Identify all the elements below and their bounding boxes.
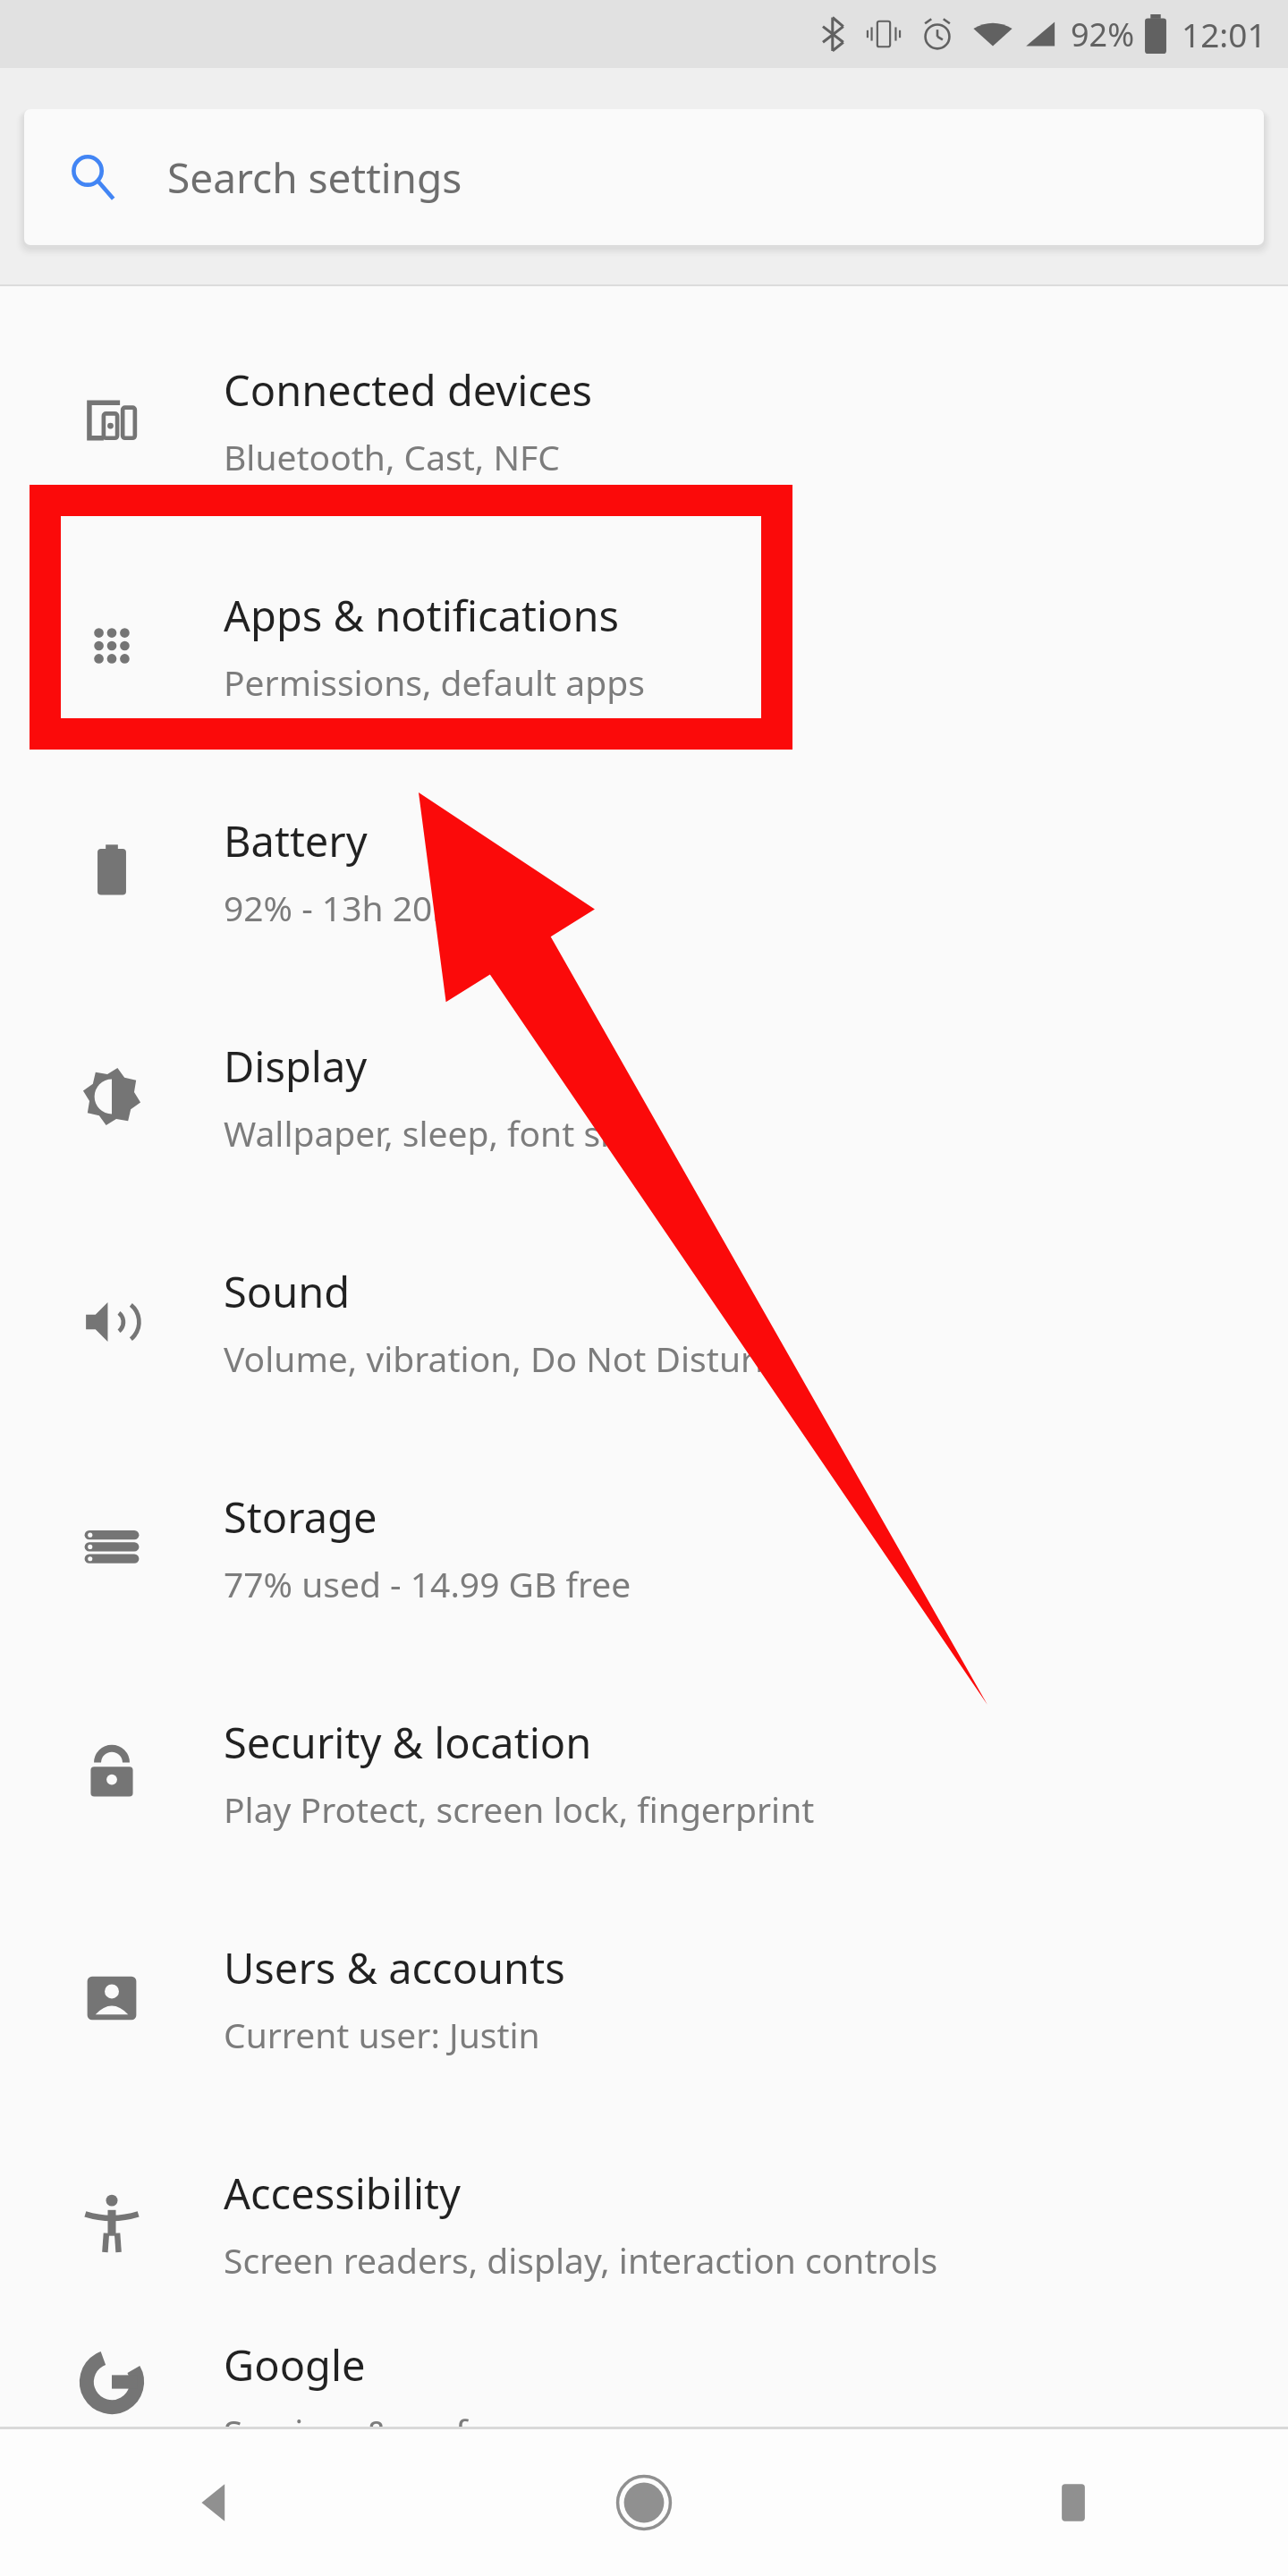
button[interactable]: Sound — [0, 1209, 1288, 1435]
staticText: Bluetooth, Cast, NFC — [224, 433, 560, 480]
button[interactable]: Battery — [0, 758, 1288, 984]
staticText: Accessibility — [224, 2165, 462, 2222]
button[interactable]: Apps & notifications — [0, 533, 1288, 758]
staticText: Apps & notifications — [224, 587, 620, 644]
button[interactable]: Google — [0, 2336, 1288, 2427]
button[interactable]: Recent apps — [859, 2429, 1288, 2576]
staticText: Security & location — [224, 1714, 592, 1771]
staticText: Connected devices — [224, 361, 592, 419]
button[interactable]: Display — [0, 984, 1288, 1209]
staticText: Current user: Justin — [224, 2011, 540, 2058]
staticText: 77% used - 14.99 GB free — [224, 1560, 631, 1607]
button[interactable]: Home — [429, 2429, 859, 2576]
staticText: 92% - 13h 20m left — [224, 884, 528, 931]
staticText: Permissions, default apps — [224, 658, 645, 706]
staticText: 92% — [1071, 13, 1135, 56]
button[interactable]: Storage — [0, 1435, 1288, 1660]
staticText: Volume, vibration, Do Not Disturb — [224, 1335, 777, 1382]
staticText: Sound — [224, 1263, 351, 1320]
button[interactable]: Users & accounts — [0, 1885, 1288, 2111]
staticText: Search settings — [167, 149, 462, 206]
staticText: Storage — [224, 1488, 377, 1546]
staticText: Wallpaper, sleep, font size — [224, 1109, 646, 1157]
staticText: 12:01 — [1182, 12, 1267, 56]
button[interactable]: Connected devices — [0, 308, 1288, 533]
staticText: Google — [224, 2336, 366, 2394]
staticText: Battery — [224, 812, 368, 869]
staticText: Users & accounts — [224, 1939, 565, 1996]
staticText: Services & preferences — [224, 2408, 596, 2427]
button[interactable]: Back — [0, 2429, 429, 2576]
staticText: Screen readers, display, interaction con… — [224, 2236, 938, 2284]
button[interactable]: Accessibility — [0, 2111, 1288, 2336]
button[interactable]: Search settings — [24, 109, 1264, 245]
staticText: Play Protect, screen lock, fingerprint — [224, 1785, 815, 1833]
button[interactable]: Security & location — [0, 1660, 1288, 1885]
staticText: Display — [224, 1038, 368, 1095]
